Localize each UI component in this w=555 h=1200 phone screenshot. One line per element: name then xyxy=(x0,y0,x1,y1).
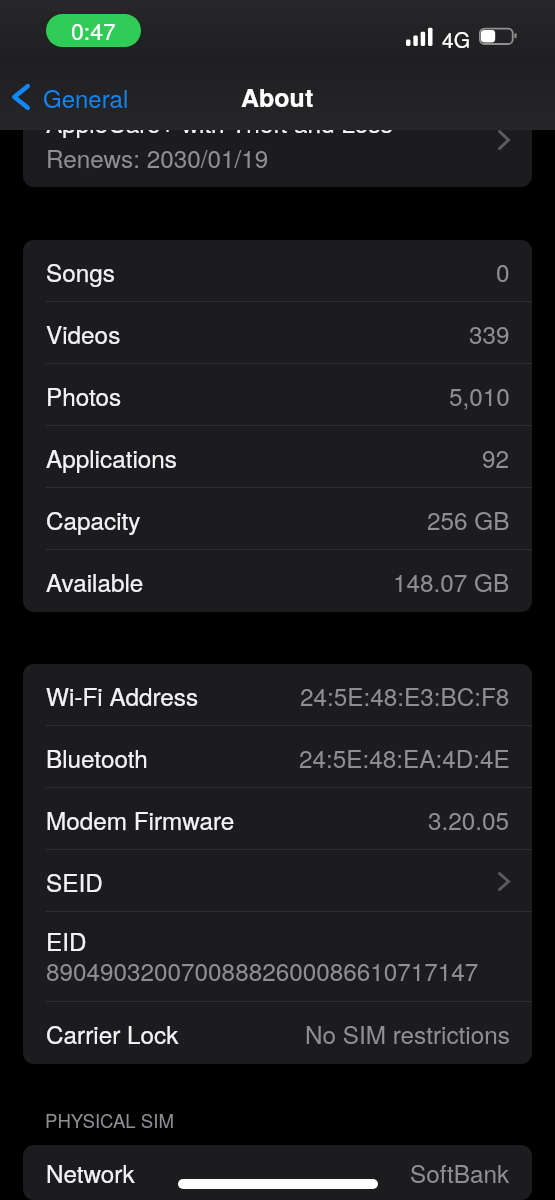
staticText: No SIM restrictions xyxy=(305,1016,510,1051)
staticText: 92 xyxy=(482,440,510,475)
button[interactable]: Bluetooth xyxy=(23,726,532,788)
staticText: 89049032007008882600086610717147 xyxy=(46,953,479,988)
staticText: Capacity xyxy=(46,502,141,537)
button[interactable]: Modem Firmware xyxy=(23,788,532,850)
other: Cellular signal xyxy=(406,27,434,46)
button[interactable]: Capacity xyxy=(23,488,532,550)
button[interactable]: Videos xyxy=(23,302,532,364)
staticText: Applications xyxy=(46,440,177,475)
staticText: Wi-Fi Address xyxy=(46,678,199,713)
button[interactable]: AppleCare+ with Theft and Loss xyxy=(23,110,532,187)
button[interactable]: Wi-Fi Address xyxy=(23,664,532,726)
button[interactable]: Applications xyxy=(23,426,532,488)
staticText: Modem Firmware xyxy=(46,802,235,837)
staticText: AppleCare+ with Theft and Loss xyxy=(46,110,393,140)
staticText: 24:5E:48:EA:4D:4E xyxy=(299,740,510,775)
button[interactable]: Available xyxy=(23,550,532,612)
staticText: Songs xyxy=(46,254,115,289)
staticText: Network xyxy=(46,1155,135,1190)
button[interactable]: Songs xyxy=(23,240,532,302)
staticText: 4G xyxy=(442,24,471,54)
staticText: 3.20.05 xyxy=(428,802,510,837)
other: Battery xyxy=(478,27,518,46)
staticText: EID xyxy=(46,923,87,958)
staticText: Videos xyxy=(46,316,121,351)
staticText: Available xyxy=(46,564,144,599)
button[interactable]: EID xyxy=(23,912,532,1002)
staticText: PHYSICAL SIM xyxy=(45,1107,174,1134)
staticText: 256 GB xyxy=(427,502,510,537)
button[interactable]: Network xyxy=(23,1145,532,1200)
staticText: 0:47 xyxy=(71,14,116,47)
staticText: 0 xyxy=(496,254,510,289)
button[interactable]: Photos xyxy=(23,364,532,426)
staticText: About xyxy=(241,79,314,115)
staticText: SEID xyxy=(46,864,103,899)
button[interactable]: Call timer 0:47 xyxy=(46,14,141,47)
staticText: 24:5E:48:E3:BC:F8 xyxy=(300,678,510,713)
staticText: Bluetooth xyxy=(46,740,148,775)
staticText: Carrier Lock xyxy=(46,1016,179,1051)
staticText: General xyxy=(43,80,129,114)
staticText: 5,010 xyxy=(449,378,510,413)
staticText: 339 xyxy=(469,316,510,351)
staticText: Photos xyxy=(46,378,122,413)
staticText: Renews: 2030/01/19 xyxy=(46,140,269,175)
staticText: 148.07 GB xyxy=(393,564,510,599)
button[interactable]: Carrier Lock xyxy=(23,1002,532,1064)
button[interactable]: General xyxy=(0,80,137,114)
button[interactable]: SEID xyxy=(23,850,532,912)
staticText: SoftBank xyxy=(410,1155,510,1190)
